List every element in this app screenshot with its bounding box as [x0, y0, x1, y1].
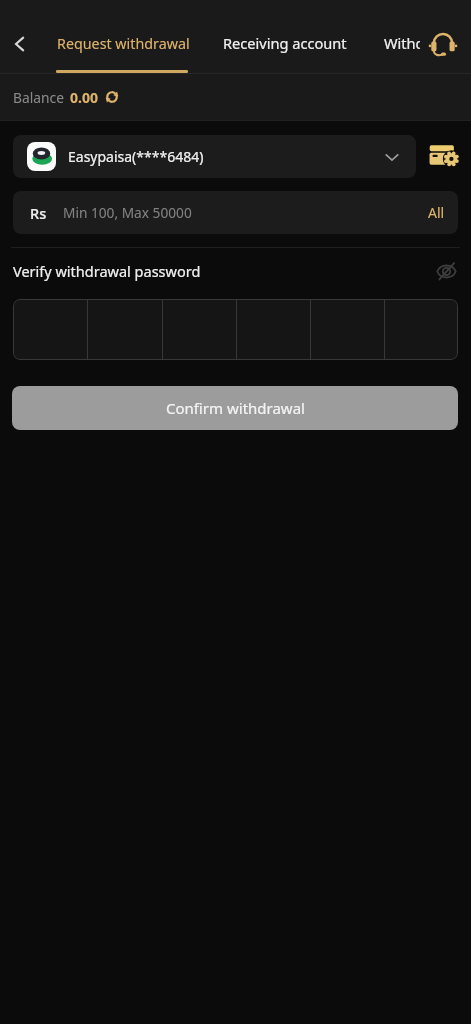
button[interactable]: Show password: [434, 260, 458, 282]
button[interactable]: Withdrawal record: [374, 27, 420, 59]
button[interactable]: Password digit 6: [385, 299, 458, 360]
button[interactable]: Account settings: [425, 139, 461, 175]
staticText: Confirm withdrawal: [166, 398, 305, 418]
button[interactable]: Password digit 2: [88, 299, 162, 360]
button[interactable]: Password digit 4: [237, 299, 310, 360]
staticText: Rs: [30, 203, 47, 223]
button[interactable]: Confirm withdrawal: [12, 386, 458, 430]
staticText: Verify withdrawal password: [13, 261, 201, 281]
button[interactable]: Password digit 5: [311, 299, 384, 360]
staticText: Receiving account: [223, 33, 347, 53]
staticText: Min 100, Max 50000: [63, 203, 192, 222]
button[interactable]: Password digit 1: [13, 299, 87, 360]
button[interactable]: Password digit 3: [163, 299, 236, 360]
button[interactable]: Refresh balance: [102, 87, 122, 107]
button[interactable]: Back: [2, 26, 38, 62]
staticText: All: [428, 203, 445, 222]
button[interactable]: Easypaisa(****6484): [13, 135, 416, 178]
button[interactable]: Rs: [13, 191, 458, 234]
staticText: Balance: [13, 88, 64, 107]
staticText: 0.00: [70, 88, 98, 107]
button[interactable]: Receiving account: [213, 27, 357, 59]
staticText: Withdrawal record: [384, 33, 420, 53]
staticText: Easypaisa(****6484): [68, 147, 204, 166]
button[interactable]: All: [426, 203, 447, 222]
button[interactable]: Request withdrawal: [47, 27, 200, 59]
staticText: Request withdrawal: [57, 34, 190, 53]
button[interactable]: Customer support: [425, 26, 461, 62]
